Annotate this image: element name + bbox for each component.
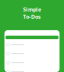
button[interactable] [4, 58, 59, 67]
button[interactable] [4, 67, 59, 72]
staticText: Simple [23, 6, 41, 13]
button[interactable] [4, 40, 59, 49]
staticText: To-Dos [23, 13, 41, 20]
button[interactable] [4, 49, 59, 58]
